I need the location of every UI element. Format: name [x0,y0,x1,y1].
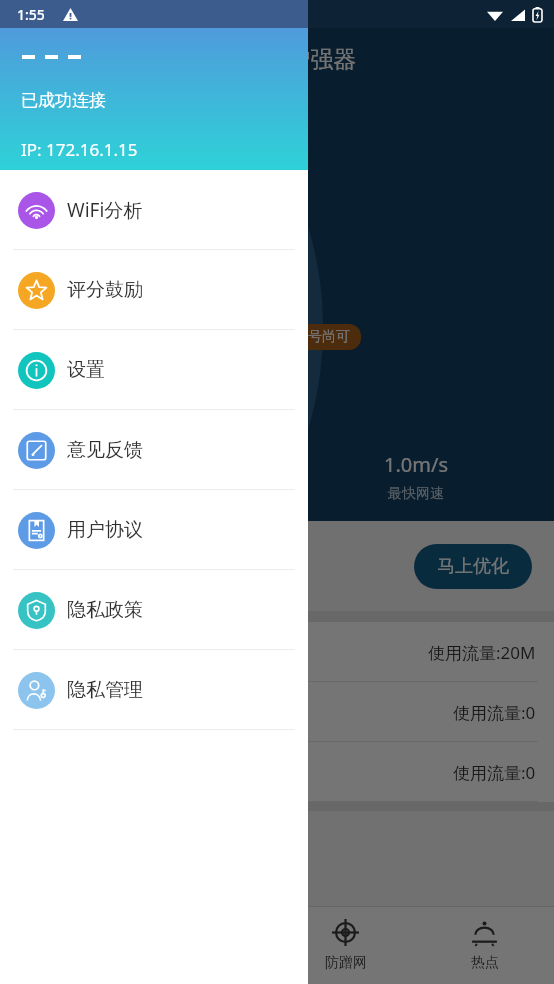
staticText: 意见反馈 [67,438,143,462]
button[interactable]: 用户协议 [0,490,308,570]
staticText: 使用流量:20M [428,641,536,664]
staticText: WiFi分析 [67,197,143,223]
staticText: 1.0m/s [384,451,448,478]
staticText: 热点 [471,954,499,972]
staticText: 使用流量:0 [453,761,536,784]
staticText: 用户协议 [67,518,143,542]
staticText: 防蹭网 [325,954,367,972]
staticText: 最快网速 [388,485,444,503]
staticText: 723k/s [107,451,170,478]
button[interactable]: 使用流量:20M [0,622,554,682]
staticText: 评分鼓励 [67,278,143,302]
staticText: 设置 [67,358,105,382]
staticText: 使用流量:0 [453,701,536,724]
button[interactable]: 马上优化 [414,544,532,589]
button[interactable]: WiFi分析 [0,170,308,250]
button[interactable]: 隐私管理 [0,650,308,730]
staticText: 信号尚可 [294,328,350,346]
button[interactable]: 热点 [415,907,554,984]
staticText: 刷新> [228,326,270,348]
button[interactable]: 使用流量:0 [0,742,554,802]
button[interactable]: 隐私政策 [0,570,308,650]
staticText: 马上优化 [437,555,509,578]
staticText: 1:55 [17,5,45,24]
staticText: IP: 172.16.1.15 [21,138,138,161]
button[interactable]: 评分鼓励 [0,250,308,330]
staticText: WiFi信号增强器 [196,42,357,73]
button[interactable]: 防蹭网 [276,907,415,984]
button[interactable]: 意见反馈 [0,410,308,490]
button[interactable]: 使用流量:0 [0,682,554,742]
staticText: 平均网速 [111,485,167,503]
button[interactable]: 设置 [0,330,308,410]
staticText: 26% [228,384,278,418]
staticText: 已成功连接 [21,90,106,111]
staticText: 隐私管理 [67,678,143,702]
staticText: 隐私政策 [67,598,143,622]
